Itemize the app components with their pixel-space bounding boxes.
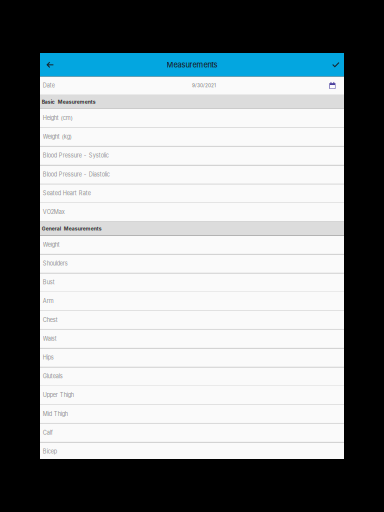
button[interactable]: Bust bbox=[40, 273, 344, 292]
staticText: VO2Max bbox=[43, 209, 65, 215]
button[interactable]: Calf bbox=[40, 424, 344, 442]
button[interactable]: Mid Thigh bbox=[40, 405, 344, 424]
button[interactable]: Blood Pressure - Systolic bbox=[40, 146, 344, 165]
staticText: 9/30/2021 bbox=[192, 82, 216, 88]
staticText: Waist bbox=[43, 335, 57, 342]
button[interactable]: Save bbox=[324, 53, 344, 77]
staticText: General Measurements bbox=[42, 226, 102, 232]
staticText: Bust bbox=[43, 279, 55, 286]
staticText: Blood Pressure - Systolic bbox=[43, 152, 109, 159]
button[interactable]: Seated Heart Rate bbox=[40, 184, 344, 203]
staticText: Bicep bbox=[43, 448, 57, 455]
button[interactable]: Weight (kg) bbox=[40, 128, 344, 146]
staticText: Arm bbox=[43, 298, 54, 304]
staticText: Chest bbox=[43, 316, 58, 323]
staticText: Seated Heart Rate bbox=[43, 190, 91, 197]
staticText: Hips bbox=[43, 354, 54, 361]
staticText: Shoulders bbox=[43, 260, 68, 267]
staticText: Date bbox=[43, 82, 55, 89]
staticText: Basic Measurements bbox=[42, 99, 96, 105]
staticText: Mid Thigh bbox=[43, 410, 68, 417]
button[interactable]: Bicep bbox=[40, 442, 344, 461]
staticText: Weight (kg) bbox=[43, 133, 72, 140]
staticText: Weight bbox=[43, 241, 60, 248]
button[interactable]: Hips bbox=[40, 348, 344, 367]
button[interactable]: Waist bbox=[40, 330, 344, 348]
button[interactable]: Height (cm) bbox=[40, 109, 344, 128]
button[interactable]: Gluteals bbox=[40, 367, 344, 386]
button[interactable]: Chest bbox=[40, 311, 344, 330]
button[interactable]: Weight bbox=[40, 236, 344, 254]
staticText: Calf bbox=[43, 429, 53, 436]
button[interactable]: Date bbox=[40, 77, 344, 95]
staticText: Upper Thigh bbox=[43, 392, 74, 398]
button[interactable]: Arm bbox=[40, 292, 344, 311]
button[interactable]: Shoulders bbox=[40, 254, 344, 273]
button[interactable]: Back bbox=[40, 53, 59, 77]
button[interactable]: Upper Thigh bbox=[40, 386, 344, 405]
staticText: Measurements bbox=[166, 60, 217, 69]
button[interactable]: VO2Max bbox=[40, 203, 344, 222]
button[interactable]: Blood Pressure - Diastolic bbox=[40, 165, 344, 184]
staticText: Height (cm) bbox=[43, 115, 73, 121]
staticText: Gluteals bbox=[43, 373, 63, 380]
staticText: Blood Pressure - Diastolic bbox=[43, 171, 110, 178]
